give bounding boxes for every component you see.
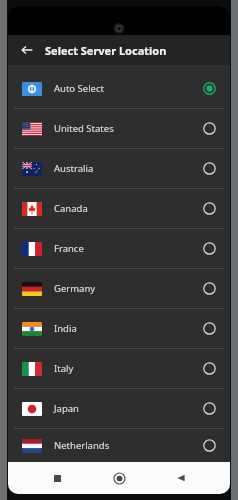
staticText: Netherlands: [54, 439, 203, 452]
staticText: United States: [54, 122, 203, 135]
button[interactable]: France: [8, 229, 230, 268]
button[interactable]: Germany: [8, 269, 230, 308]
button[interactable]: Australia: [8, 149, 230, 188]
button[interactable]: Back: [168, 465, 194, 491]
button[interactable]: Japan: [8, 389, 230, 428]
staticText: India: [54, 322, 203, 335]
staticText: Italy: [54, 362, 203, 375]
button[interactable]: United States: [8, 109, 230, 148]
button[interactable]: Auto Select: [8, 69, 230, 108]
staticText: Australia: [54, 162, 203, 175]
staticText: France: [54, 242, 203, 255]
button[interactable]: Back: [17, 40, 37, 60]
staticText: Canada: [54, 202, 203, 215]
button[interactable]: India: [8, 309, 230, 348]
button[interactable]: Netherlands: [8, 429, 230, 462]
staticText: Auto Select: [54, 82, 203, 95]
button[interactable]: Home: [106, 465, 132, 491]
button[interactable]: Recent apps: [44, 465, 70, 491]
staticText: Japan: [54, 402, 203, 415]
staticText: Germany: [54, 282, 203, 295]
button[interactable]: Italy: [8, 349, 230, 388]
staticText: Select Server Location: [45, 43, 167, 58]
button[interactable]: Canada: [8, 189, 230, 228]
